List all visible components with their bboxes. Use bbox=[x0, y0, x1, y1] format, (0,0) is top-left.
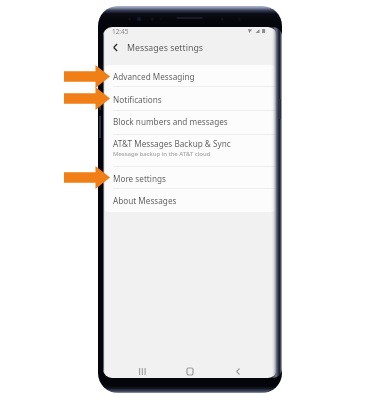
staticText: Messages settings bbox=[127, 42, 204, 54]
staticText: AT&T Messages Backup & Sync bbox=[113, 138, 231, 149]
button[interactable]: Recent apps bbox=[127, 361, 157, 378]
staticText: Block numbers and messages bbox=[113, 116, 228, 127]
button[interactable]: Block numbers and messages bbox=[103, 111, 277, 135]
staticText: Notifications bbox=[113, 94, 162, 105]
staticText: About Messages bbox=[113, 195, 177, 206]
button[interactable]: Back bbox=[107, 39, 123, 55]
button[interactable]: Notifications bbox=[103, 87, 277, 111]
button[interactable]: About Messages bbox=[103, 189, 277, 212]
staticText: More settings bbox=[113, 173, 166, 184]
button[interactable]: Home bbox=[175, 361, 205, 378]
button[interactable]: Advanced Messaging bbox=[103, 65, 277, 87]
staticText: Message backup in the AT&T cloud bbox=[113, 150, 211, 158]
button[interactable]: Back bbox=[223, 361, 253, 378]
button[interactable]: AT&T Messages Backup & Sync bbox=[103, 135, 277, 167]
button[interactable]: More settings bbox=[103, 167, 277, 189]
staticText: Advanced Messaging bbox=[113, 71, 195, 82]
staticText: 12:45 bbox=[112, 27, 129, 36]
